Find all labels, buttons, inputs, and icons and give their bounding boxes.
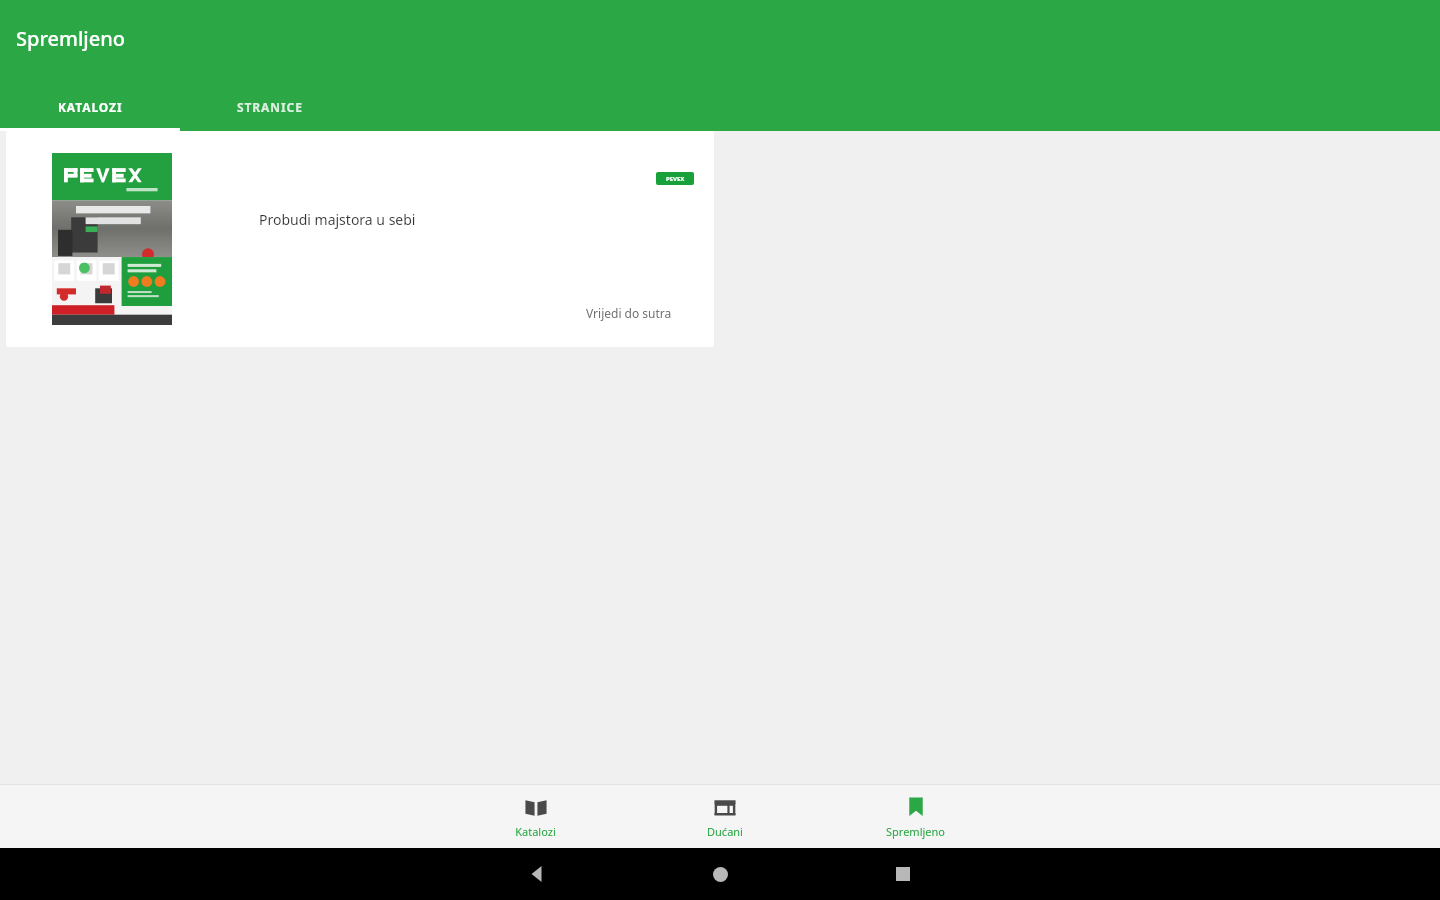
button[interactable]: STRANICE	[180, 82, 360, 131]
button[interactable]: Back	[518, 854, 558, 894]
staticText: Spremljeno	[16, 25, 125, 52]
button[interactable]: Home	[700, 854, 740, 894]
staticText: KATALOZI	[58, 99, 123, 115]
staticText: Dućani	[707, 824, 743, 839]
button[interactable]: PEVEX	[6, 131, 714, 347]
staticText: PEVEX	[666, 175, 685, 183]
staticText: STRANICE	[237, 99, 303, 115]
staticText: Probudi majstora u sebi	[259, 210, 416, 229]
button[interactable]: Recent apps	[883, 854, 923, 894]
staticText: Katalozi	[515, 824, 556, 839]
button[interactable]: Spremljeno	[820, 785, 1010, 848]
staticText: Vrijedi do sutra	[586, 305, 672, 321]
button[interactable]: Katalozi	[440, 785, 630, 848]
button[interactable]: Dućani	[630, 785, 820, 848]
staticText: Spremljeno	[886, 824, 945, 839]
button[interactable]: KATALOZI	[0, 82, 180, 131]
